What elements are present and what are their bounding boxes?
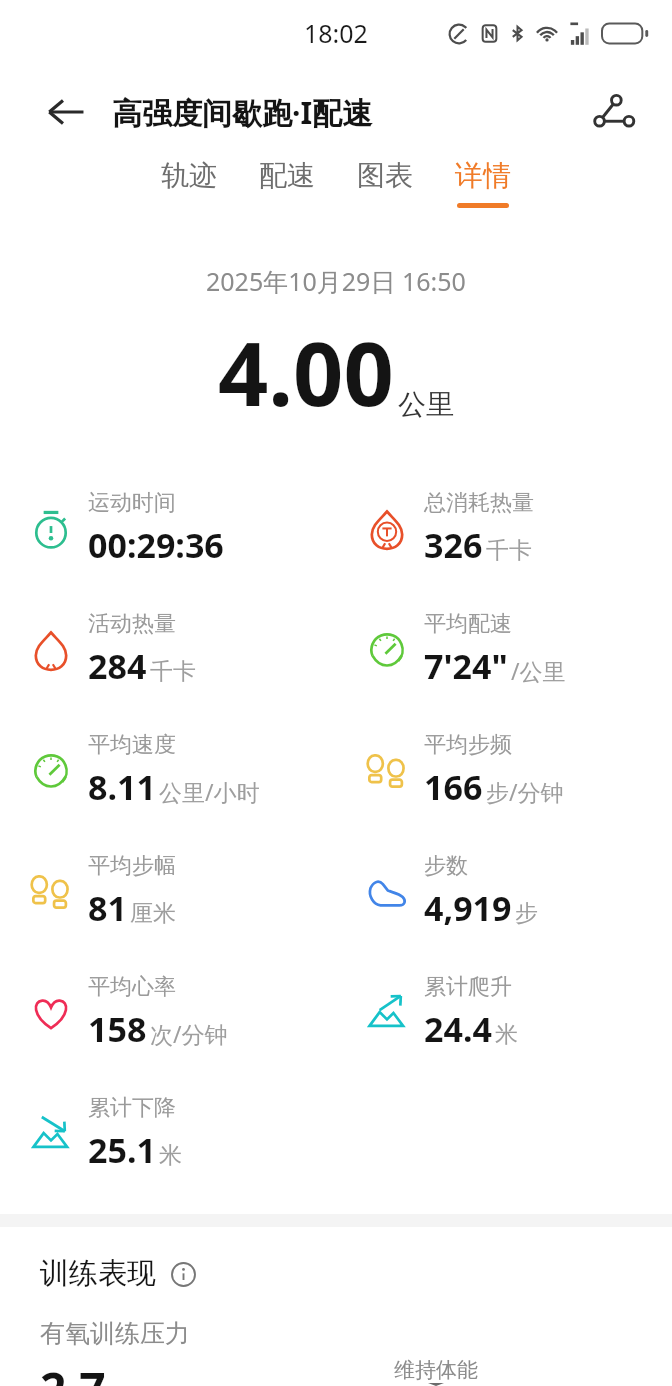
staticText: 维持体能	[394, 1357, 478, 1383]
staticText: 326	[424, 522, 483, 568]
button[interactable]: 平均配速	[336, 589, 672, 710]
button[interactable]: 累计下降	[0, 1073, 336, 1194]
staticText: 2.7	[40, 1357, 106, 1386]
button[interactable]: 累计爬升	[336, 952, 672, 1073]
staticText: 活动热量	[88, 610, 176, 638]
button[interactable]: Back	[42, 88, 90, 136]
staticText: 7'24"	[424, 643, 508, 689]
staticText: 累计爬升	[424, 973, 512, 1001]
staticText: 次/分钟	[150, 1018, 228, 1049]
staticText: 步	[515, 899, 538, 928]
staticText: 轨迹	[161, 158, 217, 193]
staticText: 8.11	[88, 764, 156, 810]
staticText: 步/分钟	[486, 776, 564, 807]
button[interactable]: Share	[584, 83, 642, 141]
staticText: 平均速度	[88, 731, 176, 759]
staticText: 配速	[259, 158, 315, 193]
staticText: 千卡	[486, 536, 532, 565]
staticText: 158	[88, 1006, 147, 1052]
staticText: 公里/小时	[159, 776, 260, 807]
staticText: 公里	[398, 387, 454, 422]
staticText: 平均配速	[424, 610, 512, 638]
button[interactable]: 总消耗热量	[336, 468, 672, 589]
staticText: 千卡	[150, 657, 196, 686]
staticText: 厘米	[130, 899, 176, 928]
button[interactable]: 配速	[254, 158, 320, 203]
staticText: 累计下降	[88, 1094, 176, 1122]
staticText: 00:29:36	[88, 522, 224, 568]
button[interactable]: 活动热量	[0, 589, 336, 710]
staticText: 4.00	[218, 312, 394, 432]
button[interactable]: 平均步幅	[0, 831, 336, 952]
button[interactable]: 平均心率	[0, 952, 336, 1073]
staticText: 米	[495, 1020, 518, 1049]
staticText: 运动时间	[88, 489, 176, 517]
staticText: 总消耗热量	[424, 489, 534, 517]
button[interactable]: 运动时间	[0, 468, 336, 589]
button[interactable]: 平均速度	[0, 710, 336, 831]
staticText: 25.1	[88, 1127, 156, 1173]
staticText: 详情	[455, 158, 511, 193]
staticText: /公里	[511, 655, 566, 686]
staticText: 2025年10月29日 16:50	[206, 264, 466, 298]
button[interactable]: 步数	[336, 831, 672, 952]
button[interactable]: Info	[168, 1259, 198, 1289]
staticText: 平均步幅	[88, 852, 176, 880]
staticText: 81	[88, 885, 127, 931]
button[interactable]: 平均步频	[336, 710, 672, 831]
staticText: 18:02	[304, 16, 368, 50]
staticText: 24.4	[424, 1006, 492, 1052]
staticText: 训练表现	[40, 1255, 156, 1292]
staticText: 有氧训练压力	[40, 1318, 190, 1349]
button[interactable]: 轨迹	[156, 158, 222, 203]
staticText: 图表	[357, 158, 413, 193]
staticText: 4,919	[424, 885, 512, 931]
staticText: 284	[88, 643, 147, 689]
staticText: 平均步频	[424, 731, 512, 759]
staticText: 高强度间歇跑·I配速	[112, 92, 373, 133]
button[interactable]: 图表	[352, 158, 418, 203]
staticText: 166	[424, 764, 483, 810]
staticText: 米	[159, 1141, 182, 1170]
staticText: 平均心率	[88, 973, 176, 1001]
button[interactable]: 详情	[450, 158, 516, 208]
staticText: 步数	[424, 852, 468, 880]
